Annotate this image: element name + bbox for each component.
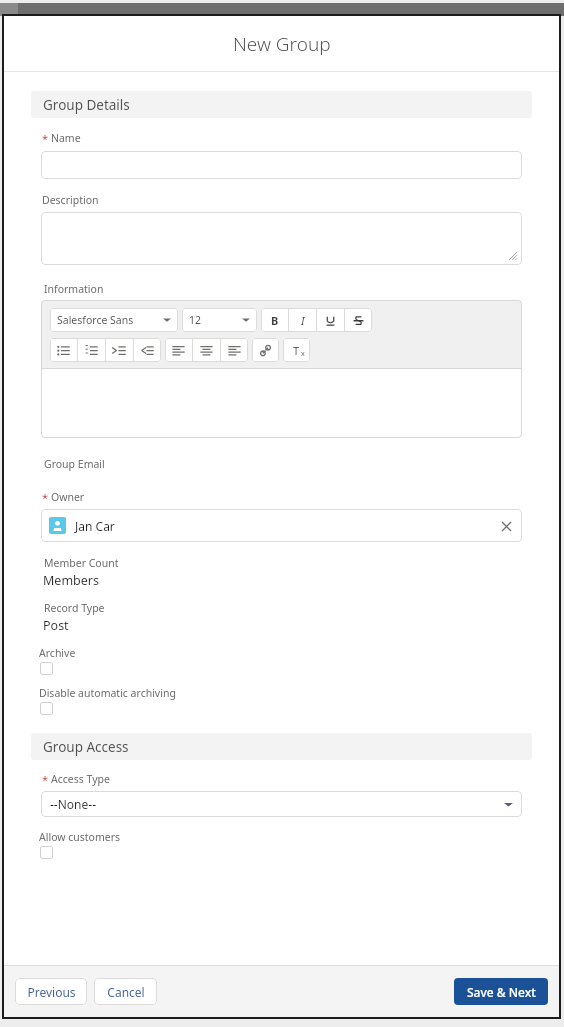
staticText: Salesforce Sans (57, 313, 134, 327)
button[interactable]: Group Access (31, 733, 532, 760)
staticText: Members (43, 572, 99, 589)
button[interactable]: Salesforce Sans (50, 308, 178, 332)
staticText: * (42, 131, 49, 146)
staticText: Group Access (43, 738, 129, 756)
button[interactable] (41, 212, 522, 265)
button[interactable]: Format tool (106, 338, 133, 362)
button[interactable]: Format tool (252, 338, 279, 362)
staticText: Archive (39, 646, 76, 660)
button[interactable]: Format tool (78, 338, 105, 362)
staticText: I (301, 313, 305, 328)
button[interactable]: Clear owner (498, 518, 514, 534)
button[interactable]: Jan Car (41, 509, 522, 542)
button[interactable] (41, 151, 522, 179)
button[interactable]: Previous (15, 978, 87, 1005)
staticText: 12 (189, 313, 202, 327)
staticText: Description (42, 193, 99, 207)
button[interactable]: Format tool (261, 308, 288, 332)
staticText: New Group (233, 31, 331, 57)
button[interactable]: Save & Next (454, 978, 548, 1005)
staticText: Name (51, 131, 81, 145)
staticText: Member Count (44, 556, 119, 570)
button[interactable]: Format tool (317, 308, 344, 332)
button[interactable]: Format tool (283, 338, 310, 362)
button[interactable]: --None-- (41, 791, 522, 817)
button[interactable]: Format tool (193, 338, 220, 362)
staticText: Group Details (43, 96, 130, 114)
staticText: --None-- (50, 796, 97, 812)
staticText: Cancel (107, 984, 145, 1000)
button[interactable] (41, 369, 522, 438)
staticText: x (301, 349, 305, 359)
button[interactable]: Format tool (221, 338, 248, 362)
staticText: Group Email (44, 457, 105, 471)
staticText: Previous (27, 984, 76, 1000)
staticText: Allow customers (39, 830, 121, 844)
button[interactable]: Format tool (289, 308, 316, 332)
button[interactable]: Format tool (50, 338, 77, 362)
button[interactable]: Format tool (345, 308, 372, 332)
button[interactable]: Archive (40, 662, 53, 675)
button[interactable]: 12 (182, 308, 257, 332)
staticText: * (42, 490, 49, 505)
staticText: Post (43, 617, 69, 634)
staticText: B (271, 313, 279, 328)
staticText: Access Type (51, 772, 110, 786)
staticText: T (293, 343, 300, 358)
staticText: Disable automatic archiving (39, 686, 176, 700)
button[interactable]: Group Details (31, 91, 532, 118)
staticText: Information (44, 282, 104, 296)
staticText: * (42, 772, 49, 787)
staticText: Owner (51, 490, 85, 504)
button[interactable]: Cancel (94, 978, 157, 1005)
staticText: Record Type (44, 601, 105, 615)
button[interactable]: Allow customers (40, 846, 53, 859)
button[interactable]: Format tool (165, 338, 192, 362)
staticText: Save & Next (467, 984, 536, 1000)
button[interactable]: Format tool (134, 338, 161, 362)
button[interactable]: Disable automatic archiving (40, 702, 53, 715)
staticText: Jan Car (75, 518, 115, 534)
